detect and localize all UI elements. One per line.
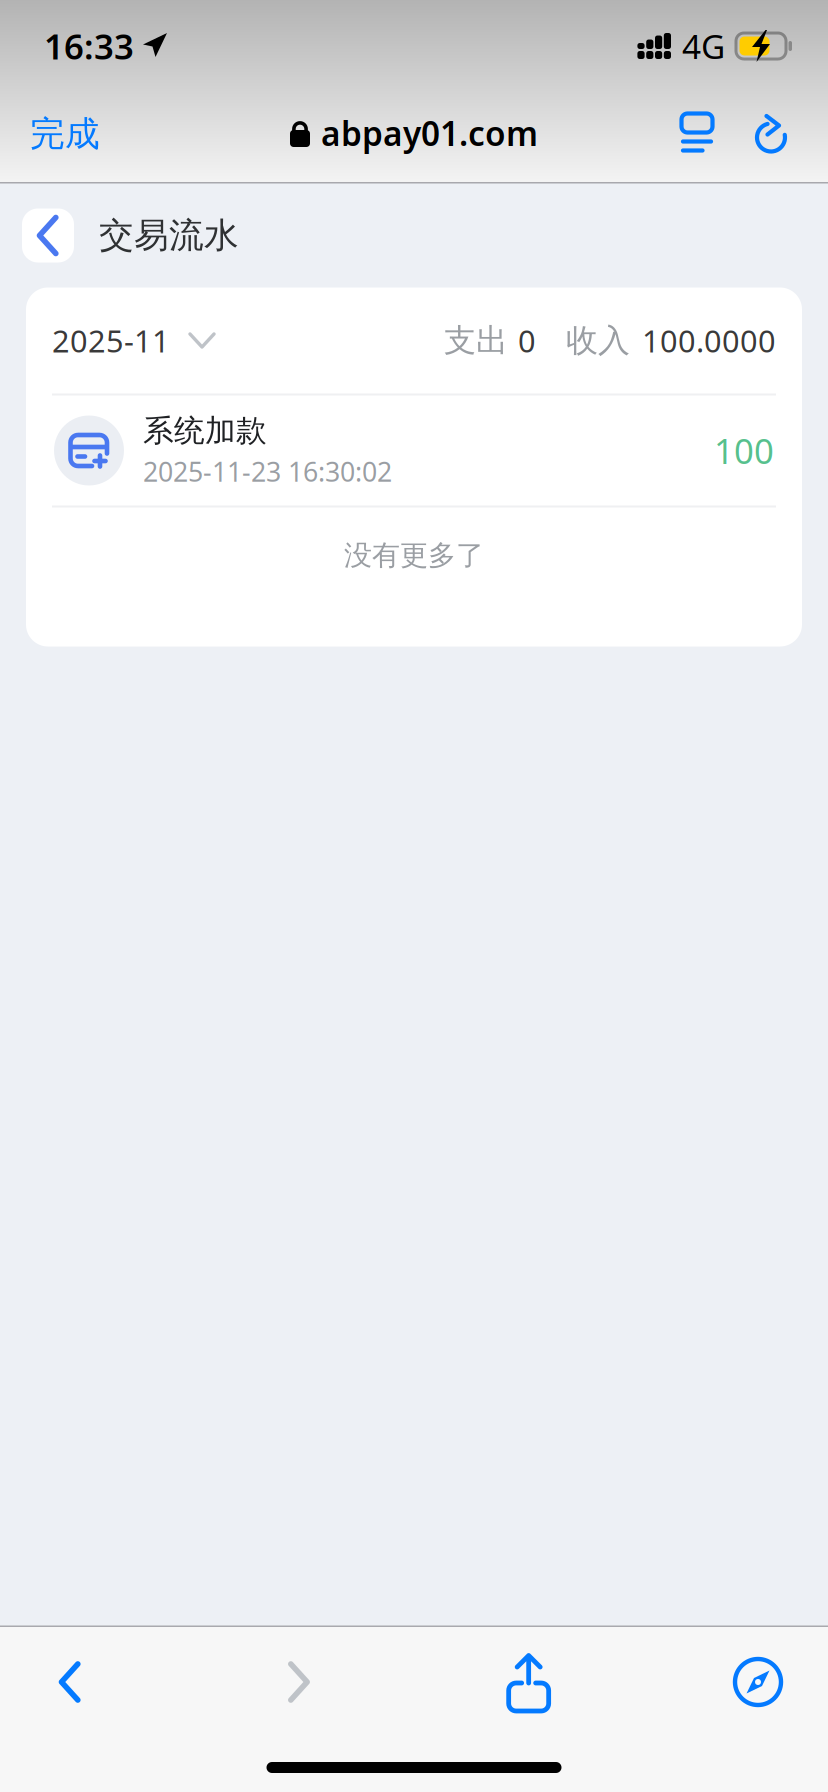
staticText: 系统加款 [143, 412, 267, 450]
button[interactable]: Forward [229, 1642, 369, 1722]
staticText: 16:33 [44, 23, 134, 69]
staticText: 2025-11-23 16:30:02 [143, 454, 392, 489]
button[interactable]: Reader view [660, 91, 734, 177]
staticText: 2025-11 [52, 320, 170, 361]
button[interactable]: 返回 [22, 208, 74, 262]
staticText: 收入 [566, 321, 630, 360]
staticText: 支出 [444, 321, 508, 360]
button[interactable]: Share [459, 1642, 599, 1722]
staticText: 没有更多了 [344, 538, 484, 573]
staticText: 100 [714, 427, 774, 473]
staticText: 100.0000 [642, 320, 776, 361]
staticText: 0 [518, 320, 536, 361]
staticText: 完成 [30, 113, 100, 155]
staticText: 交易流水 [99, 214, 239, 257]
button[interactable]: 完成 [24, 91, 106, 177]
staticText: 4G [682, 24, 725, 68]
button[interactable]: Bookmarks [688, 1642, 828, 1722]
button[interactable]: Back [0, 1642, 140, 1722]
button[interactable]: 2025-11 [52, 305, 216, 375]
button[interactable]: 系统加款 [26, 395, 802, 505]
staticText: abpay01.com [321, 111, 538, 155]
button[interactable]: Reload [734, 91, 808, 177]
